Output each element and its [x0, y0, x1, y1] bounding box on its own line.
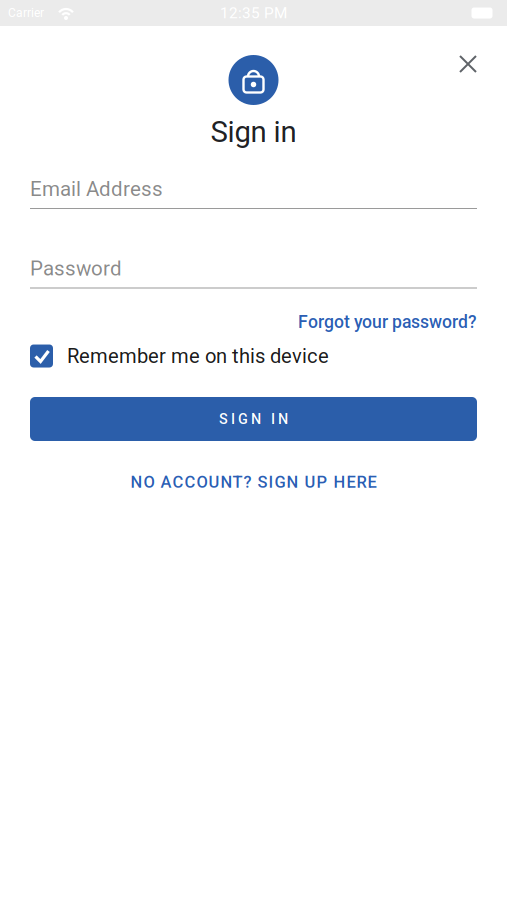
staticText: S I G N I N: [219, 411, 288, 427]
button[interactable]: NO ACCOUNT? SIGN UP HERE: [53, 467, 453, 497]
staticText: NO ACCOUNT? SIGN UP HERE: [130, 472, 376, 492]
staticText: Password: [30, 256, 122, 281]
staticText: Carrier: [8, 6, 44, 20]
staticText: Remember me on this device: [67, 344, 329, 368]
staticText: 12:35 PM: [220, 4, 287, 22]
button[interactable]: Remember me on this device: [30, 339, 477, 373]
button[interactable]: Close: [456, 52, 480, 76]
button[interactable]: Password: [30, 247, 477, 288]
staticText: Email Address: [30, 177, 163, 201]
button[interactable]: S I G N I N: [30, 397, 477, 441]
staticText: Sign in: [210, 115, 296, 149]
button[interactable]: Forgot your password?: [30, 312, 477, 332]
button[interactable]: Email Address: [30, 168, 477, 209]
staticText: Forgot your password?: [298, 312, 477, 332]
